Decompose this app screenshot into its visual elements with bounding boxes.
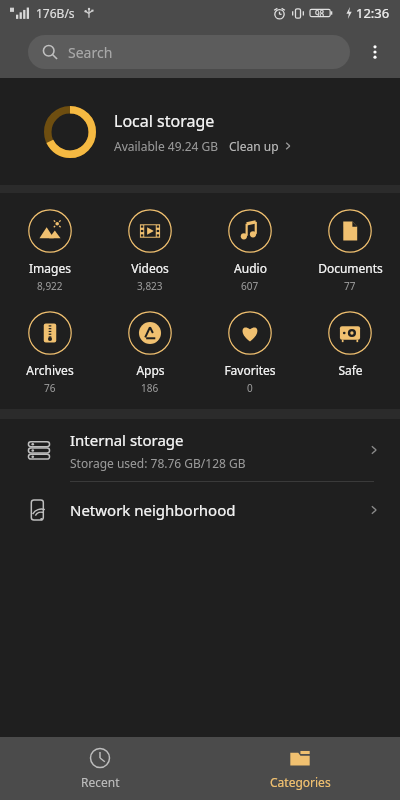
staticText: Available 49.24 GB bbox=[114, 138, 219, 154]
button[interactable]: Documents bbox=[300, 203, 400, 299]
button[interactable]: Network neighborhood bbox=[0, 482, 400, 538]
button[interactable]: Safe bbox=[300, 305, 400, 397]
button[interactable]: More options bbox=[350, 26, 400, 78]
button[interactable]: Apps bbox=[100, 305, 200, 401]
staticText: Safe bbox=[338, 362, 363, 378]
staticText: 76 bbox=[44, 381, 56, 395]
button[interactable]: Images bbox=[0, 203, 100, 299]
staticText: Categories bbox=[270, 774, 331, 790]
staticText: Network neighborhood bbox=[70, 500, 236, 520]
staticText: 77 bbox=[344, 279, 356, 293]
staticText: Audio bbox=[234, 260, 267, 276]
button[interactable]: Audio bbox=[200, 203, 300, 299]
button[interactable]: Local storage bbox=[0, 78, 400, 185]
staticText: Apps bbox=[136, 362, 165, 378]
staticText: 98 bbox=[315, 8, 325, 19]
button[interactable]: Search bbox=[28, 35, 350, 69]
staticText: Videos bbox=[131, 260, 169, 276]
staticText: Local storage bbox=[114, 110, 215, 132]
staticText: 0 bbox=[247, 381, 253, 395]
staticText: Storage used: 78.76 GB/128 GB bbox=[70, 455, 246, 471]
staticText: 607 bbox=[241, 279, 259, 293]
button[interactable]: Archives bbox=[0, 305, 100, 401]
staticText: 12:36 bbox=[356, 4, 390, 22]
staticText: Clean up bbox=[229, 138, 279, 154]
staticText: 186 bbox=[141, 381, 159, 395]
staticText: Internal storage bbox=[70, 430, 184, 450]
button[interactable]: Recent bbox=[0, 737, 200, 800]
button[interactable]: Clean up bbox=[229, 138, 293, 154]
staticText: Images bbox=[29, 260, 71, 276]
button[interactable]: Internal storage bbox=[0, 419, 400, 481]
staticText: 176B/s bbox=[36, 5, 75, 21]
staticText: Documents bbox=[318, 260, 383, 276]
staticText: 8,922 bbox=[37, 279, 63, 293]
staticText: Favorites bbox=[224, 362, 276, 378]
button[interactable]: Videos bbox=[100, 203, 200, 299]
staticText: Recent bbox=[81, 774, 120, 790]
staticText: 3,823 bbox=[137, 279, 163, 293]
staticText: Archives bbox=[26, 362, 74, 378]
button[interactable]: Categories bbox=[200, 737, 400, 800]
staticText: Search bbox=[68, 43, 113, 62]
button[interactable]: Favorites bbox=[200, 305, 300, 401]
